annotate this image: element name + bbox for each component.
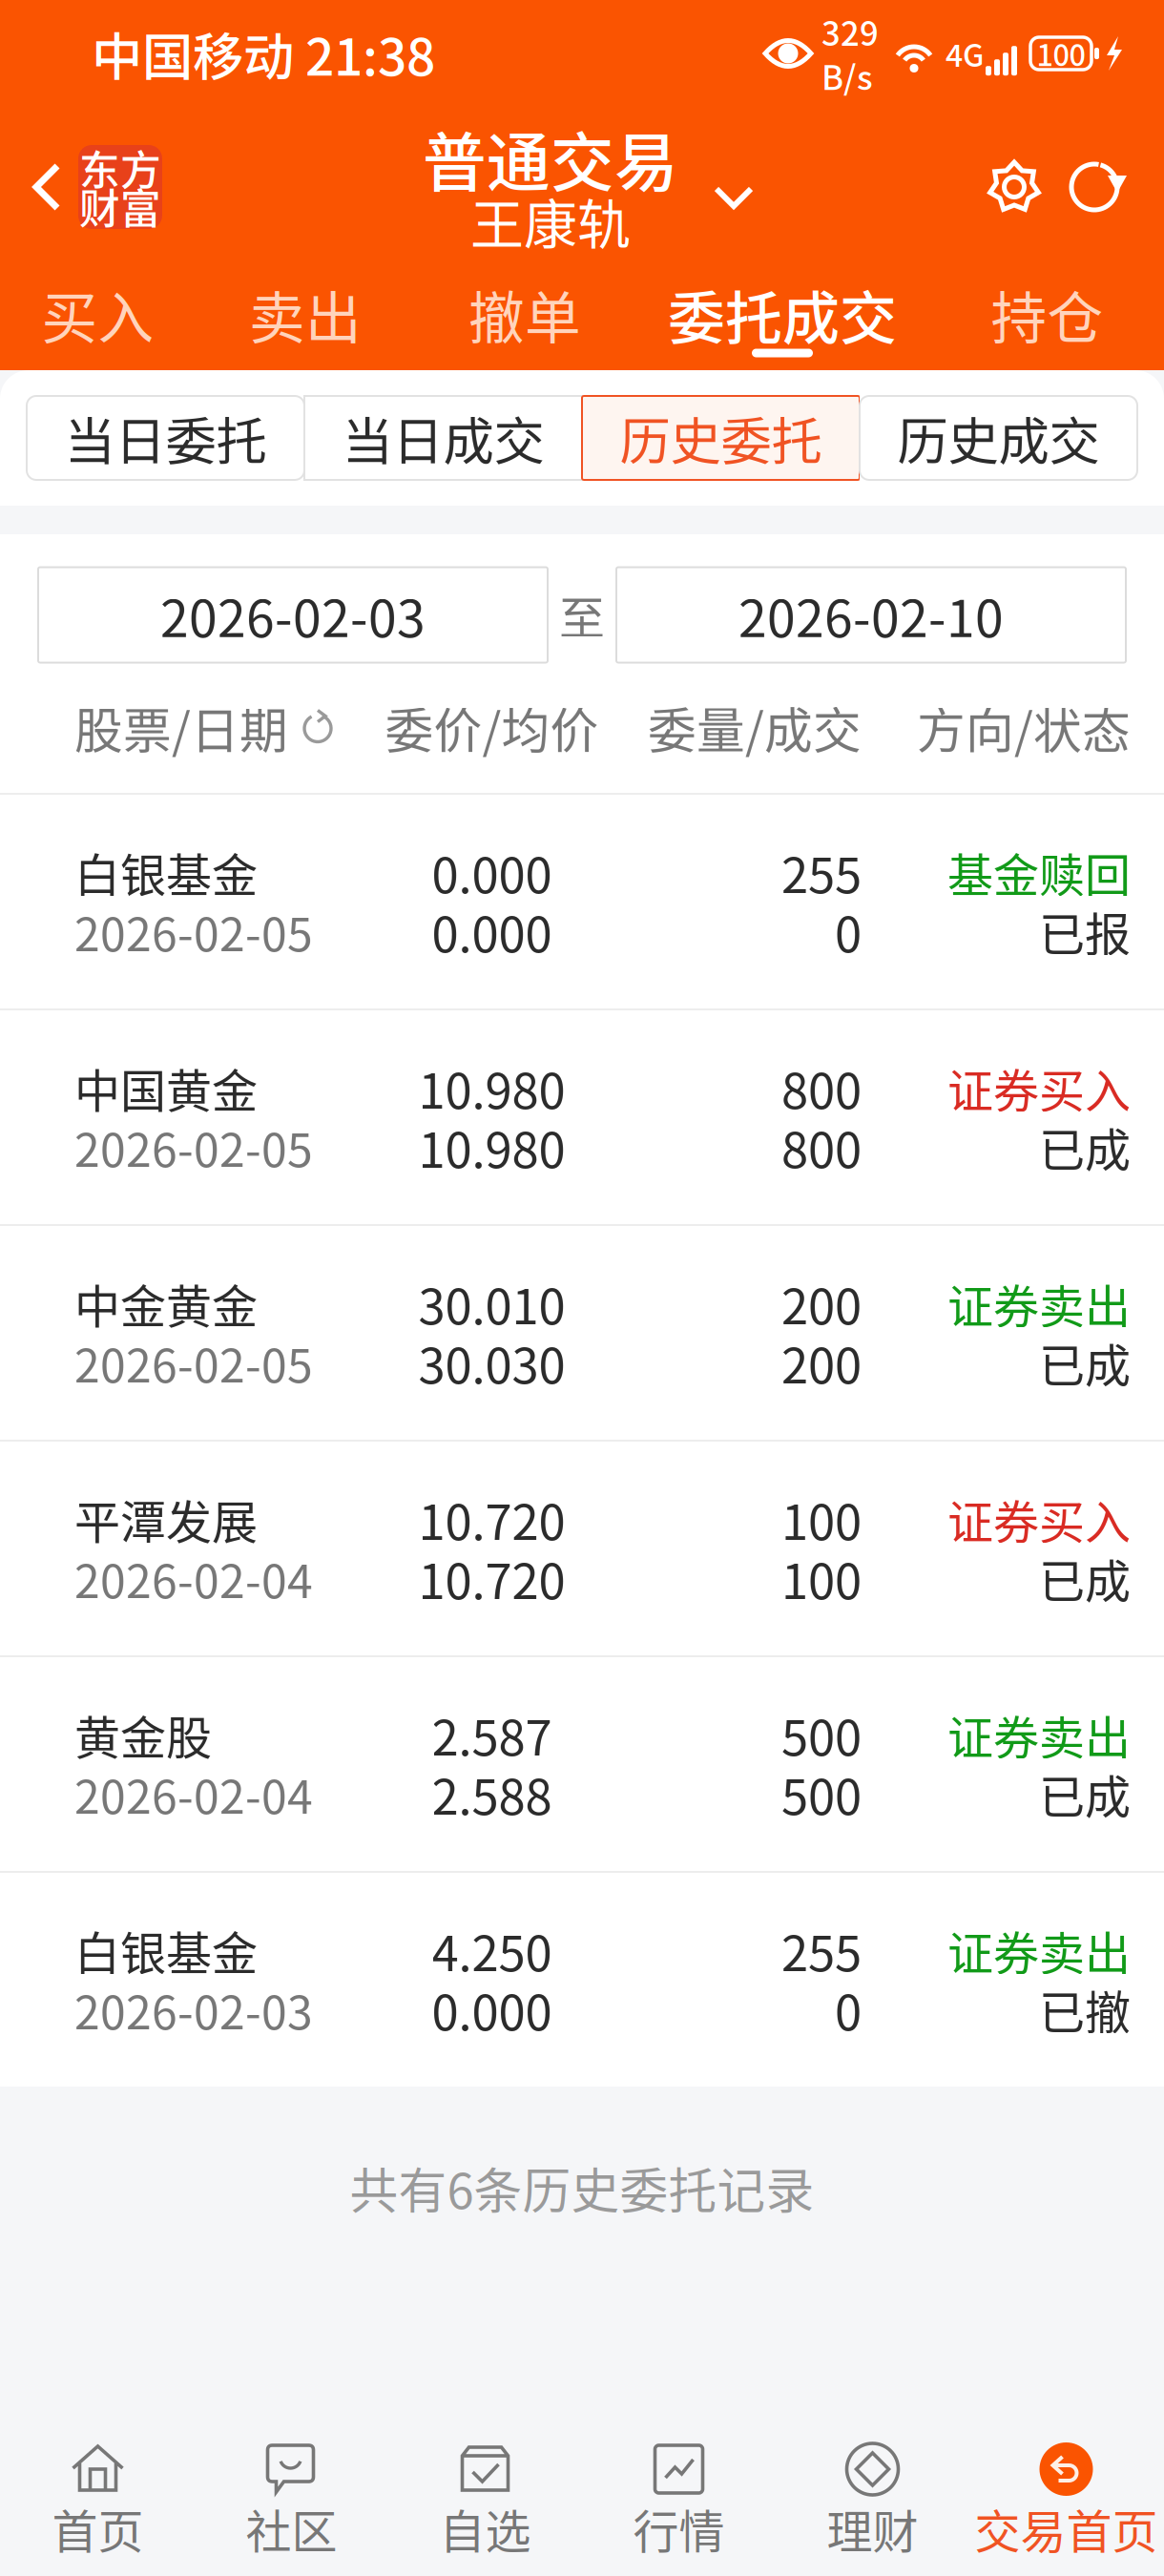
staticText: 0.000 [432,1974,552,2044]
staticText: 财富 [79,177,161,236]
staticText: 白银基金 [74,839,258,905]
staticText: 2026-02-03 [160,578,426,652]
staticText: 100 [781,1484,862,1554]
button[interactable]: 行情 [582,2379,776,2576]
staticText: 方向/状态 [917,692,1131,762]
staticText: 0 [835,1974,862,2044]
button[interactable]: 平潭发展 [0,1442,1164,1655]
staticText: 理财 [827,2495,918,2561]
button[interactable]: 返回 [0,145,162,229]
staticText: 历史委托 [620,401,822,475]
button[interactable]: 社区 [195,2379,388,2576]
staticText: 证券卖出 [947,1917,1131,1983]
staticText: 共有6条历史委托记录 [350,2153,814,2223]
staticText: 证券卖出 [947,1270,1131,1336]
staticText: 行情 [633,2495,725,2561]
button[interactable]: 委托成交 [634,267,930,370]
staticText: 历史成交 [897,401,1100,475]
staticText: 普通交易 [423,112,678,204]
button[interactable]: 设置 [987,159,1042,215]
button[interactable]: 撤单 [415,267,634,370]
staticText: 平潭发展 [74,1486,258,1552]
button[interactable]: 当日成交 [304,396,582,480]
staticText: 中国黄金 [74,1054,258,1121]
staticText: 500 [781,1699,862,1770]
staticText: 自选 [439,2495,531,2561]
staticText: 已成 [1039,1114,1131,1180]
button[interactable]: 中金黄金 [0,1226,1164,1440]
staticText: 255 [781,1915,862,1985]
staticText: 委量/成交 [648,692,862,762]
button[interactable]: 首页 [1,2379,195,2576]
staticText: 中国移动 21:38 [92,17,435,90]
staticText: 10.720 [418,1543,565,1613]
staticText: 100 [1037,32,1085,75]
staticText: 30.030 [418,1327,565,1397]
button[interactable]: 卖出 [196,267,415,370]
staticText: 10.980 [418,1053,565,1123]
staticText: 30.010 [418,1268,565,1338]
staticText: 329 [821,7,879,55]
button[interactable]: 当日委托 [27,396,304,480]
staticText: 证券买入 [947,1486,1131,1552]
button[interactable]: 历史委托 [582,396,860,480]
staticText: 中金黄金 [74,1270,258,1336]
staticText: 2026-02-04 [74,1760,313,1827]
staticText: 黄金股 [74,1701,212,1768]
staticText: 证券卖出 [947,1701,1131,1768]
staticText: 王康轨 [470,182,631,259]
staticText: 200 [781,1268,862,1338]
button[interactable]: 交易首页 [969,2379,1163,2576]
button[interactable]: 2026-02-10 [616,567,1126,663]
staticText: 2026-02-03 [74,1976,313,2042]
staticText: 已成 [1039,1760,1131,1827]
staticText: 当日委托 [64,401,267,475]
button[interactable]: 买入 [0,267,196,370]
staticText: 已成 [1039,1329,1131,1396]
button[interactable]: 持仓 [930,267,1164,370]
staticText: 卖出 [249,274,362,355]
button[interactable]: 中国黄金 [0,1010,1164,1224]
staticText: 2026-02-05 [74,898,313,964]
staticText: 撤单 [468,274,581,355]
staticText: 买入 [42,274,154,355]
staticText: 东方 [79,138,161,197]
staticText: 0.000 [432,896,552,966]
staticText: 4.250 [432,1915,552,1985]
staticText: 基金赎回 [947,839,1131,905]
staticText: 2026-02-05 [74,1329,313,1396]
button[interactable]: 刷新 [1042,158,1122,216]
button[interactable]: 自选 [388,2379,582,2576]
staticText: 800 [781,1112,862,1182]
staticText: 持仓 [991,274,1103,355]
button[interactable]: 2026-02-03 [38,567,548,663]
staticText: 交易首页 [975,2495,1158,2561]
staticText: B/s [821,52,873,99]
staticText: 首页 [52,2495,144,2561]
staticText: 100 [781,1543,862,1613]
button[interactable]: 黄金股 [0,1657,1164,1871]
staticText: 10.980 [418,1112,565,1182]
staticText: 200 [781,1327,862,1397]
button[interactable]: 白银基金 [0,1873,1164,2087]
staticText: 500 [781,1759,862,1829]
staticText: 当日成交 [342,401,544,475]
staticText: 0.000 [432,837,552,907]
button[interactable]: 理财 [776,2379,969,2576]
staticText: 证券买入 [947,1054,1131,1121]
staticText: 至 [559,582,605,648]
staticText: 800 [781,1053,862,1123]
staticText: 已撤 [1039,1976,1131,2042]
button[interactable]: 普通交易 [405,117,759,257]
staticText: 2.588 [432,1759,552,1829]
staticText: 255 [781,837,862,907]
button[interactable]: 白银基金 [0,795,1164,1008]
staticText: 2026-02-04 [74,1545,313,1611]
staticText: 委价/均价 [385,692,599,762]
staticText: 2026-02-05 [74,1114,313,1180]
staticText: 2.587 [432,1699,552,1770]
staticText: 2026-02-10 [738,578,1004,652]
button[interactable]: 历史成交 [860,396,1137,480]
staticText: 10.720 [418,1484,565,1554]
staticText: 已成 [1039,1545,1131,1611]
